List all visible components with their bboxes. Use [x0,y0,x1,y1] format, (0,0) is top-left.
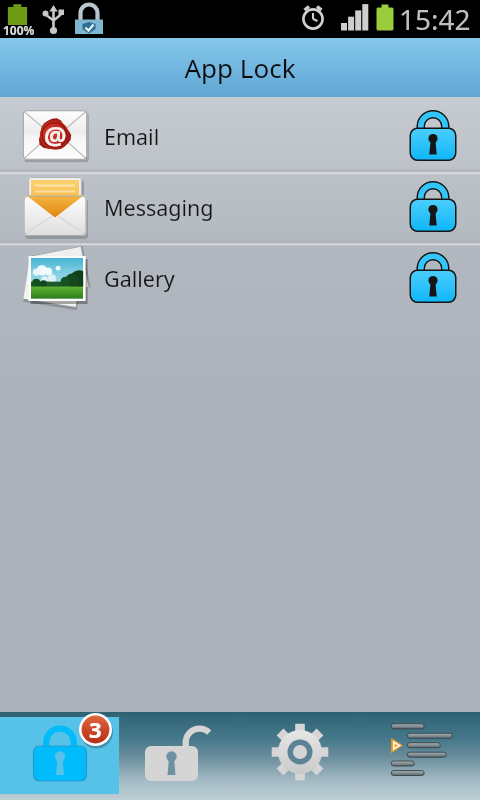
staticText: Gallery [104,264,175,293]
staticText: 3 [89,714,102,744]
button[interactable]: Gallery [0,239,480,310]
staticText: App Lock [184,50,296,85]
button[interactable]: @ [0,97,480,168]
staticText: Messaging [104,193,214,222]
button[interactable]: Unlocked apps [120,712,240,800]
staticText: Email [104,122,160,151]
button[interactable]: Locked apps [0,712,120,800]
staticText: 15:42 [399,0,471,38]
button[interactable]: Settings [240,712,360,800]
button[interactable]: Activity log [360,712,480,800]
staticText: 100% [3,22,35,38]
button[interactable]: Messaging [0,168,480,239]
staticText: @ [44,118,67,152]
